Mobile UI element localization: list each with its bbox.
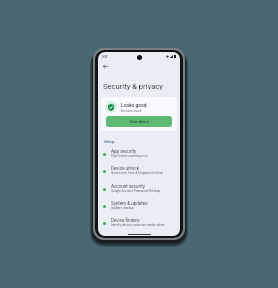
button[interactable]: System & updates [98, 199, 180, 215]
staticText: Screen lock, Face & Fingerprint Unlock [111, 171, 163, 175]
staticText: Settings [104, 140, 115, 143]
button[interactable]: Back [99, 60, 111, 72]
staticText: System & updates [111, 201, 148, 206]
staticText: Device unlock [111, 166, 139, 171]
staticText: Play Protect scanning is on [111, 154, 148, 158]
button[interactable]: App security [98, 147, 180, 163]
staticText: Google Account, Password Checkup [111, 189, 161, 193]
staticText: Identify devices, unknown tracker alerts [111, 223, 165, 227]
staticText: No issues found [121, 109, 142, 112]
staticText: Security & privacy [103, 82, 163, 91]
button[interactable]: Device finders [98, 216, 180, 232]
staticText: 9:00 [102, 56, 108, 59]
staticText: App security [111, 149, 137, 154]
button[interactable]: Scan device [106, 116, 172, 127]
staticText: Updates, backup [111, 206, 134, 210]
button[interactable]: Device unlock [98, 164, 180, 180]
staticText: Account security [111, 184, 145, 189]
staticText: Scan device [130, 120, 149, 124]
button[interactable]: Account security [98, 182, 180, 198]
staticText: Looks good [121, 102, 147, 108]
staticText: Device finders [111, 218, 140, 223]
